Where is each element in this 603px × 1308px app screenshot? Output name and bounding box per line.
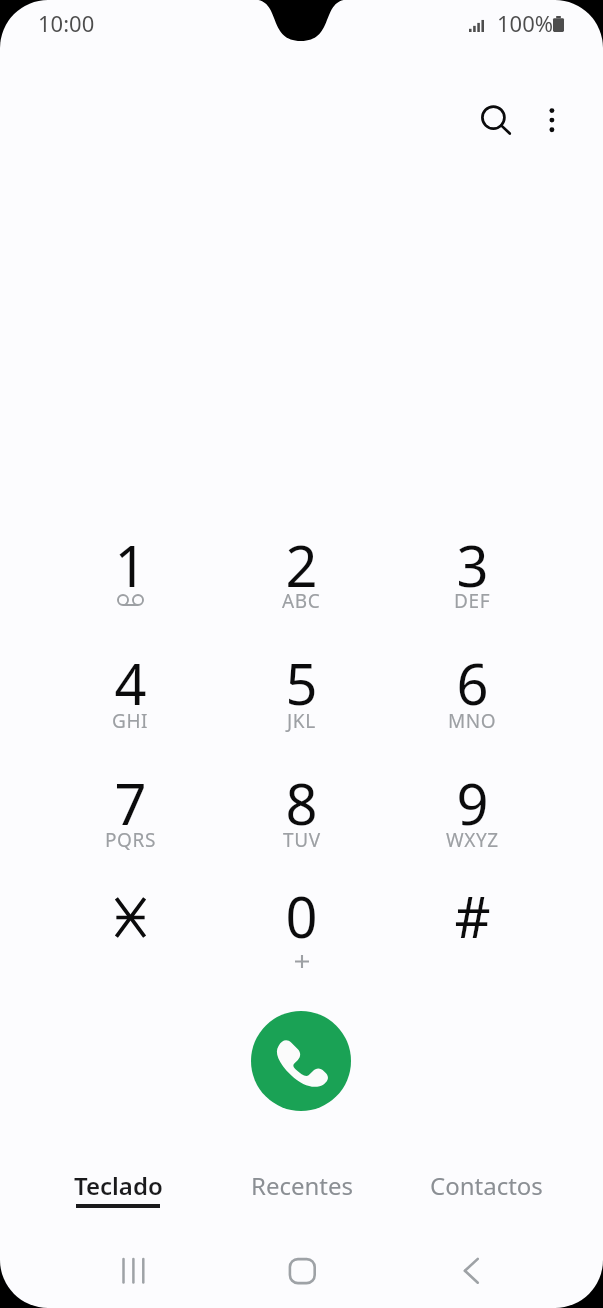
staticText: ABC: [282, 588, 321, 614]
button[interactable]: 2: [216, 498, 387, 615]
staticText: 9: [456, 765, 489, 841]
staticText: 2: [285, 527, 318, 603]
button[interactable]: 7: [45, 736, 216, 853]
button[interactable]: [45, 849, 216, 966]
staticText: MNO: [448, 708, 497, 734]
staticText: Recentes: [251, 1169, 354, 1202]
button[interactable]: 4: [45, 616, 216, 733]
button[interactable]: 6: [387, 616, 558, 733]
staticText: JKL: [287, 708, 316, 734]
button[interactable]: Recents: [73, 1247, 193, 1295]
button[interactable]: Teclado: [26, 1166, 210, 1214]
button[interactable]: Contactos: [394, 1166, 578, 1214]
button[interactable]: Home: [242, 1247, 362, 1295]
button[interactable]: #: [387, 849, 558, 966]
staticText: 5: [285, 645, 318, 721]
staticText: PQRS: [105, 827, 156, 853]
staticText: GHI: [112, 708, 149, 734]
button[interactable]: Call: [251, 1011, 351, 1111]
staticText: Teclado: [74, 1169, 163, 1202]
staticText: 100%: [497, 8, 554, 38]
button[interactable]: 5: [216, 616, 387, 733]
staticText: TUV: [283, 827, 321, 853]
button[interactable]: 1: [45, 498, 216, 615]
staticText: 4: [114, 645, 147, 721]
button[interactable]: Recentes: [210, 1166, 394, 1214]
staticText: DEF: [454, 588, 491, 614]
staticText: 10:00: [38, 8, 95, 38]
button[interactable]: More options: [526, 91, 579, 144]
staticText: #: [454, 878, 491, 954]
staticText: 6: [456, 645, 489, 721]
staticText: Contactos: [430, 1169, 543, 1202]
staticText: 8: [285, 765, 318, 841]
staticText: WXYZ: [446, 827, 499, 853]
button[interactable]: Back: [412, 1247, 532, 1295]
staticText: 1: [114, 527, 147, 603]
button[interactable]: 9: [387, 736, 558, 853]
button[interactable]: 3: [387, 498, 558, 615]
button[interactable]: 0: [216, 849, 387, 966]
staticText: 3: [456, 527, 489, 603]
staticText: 0: [285, 878, 318, 954]
staticText: 7: [114, 765, 147, 841]
button[interactable]: Search: [467, 91, 520, 144]
button[interactable]: 8: [216, 736, 387, 853]
